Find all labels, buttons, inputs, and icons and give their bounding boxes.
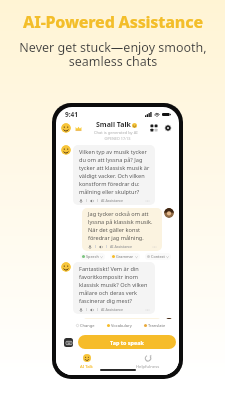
staticText: AI Talk (80, 364, 93, 370)
button[interactable]: Profile (61, 123, 71, 133)
button[interactable]: AI Talk (74, 353, 99, 371)
button[interactable]: Vocabulary (105, 322, 134, 329)
staticText: AI Assistance (110, 244, 133, 249)
button[interactable]: Tap to speak (78, 335, 176, 349)
button[interactable]: Grammar (110, 253, 140, 260)
button[interactable]: Fantastiskt! Vem är din favoritkompositr… (73, 262, 155, 314)
button[interactable]: Change (74, 322, 97, 329)
button[interactable]: Context (145, 253, 171, 260)
button[interactable]: Topics (149, 123, 159, 133)
staticText: Speech (86, 254, 99, 259)
staticText: Never get stuck—enjoy smooth, seamless c… (19, 39, 207, 70)
button[interactable]: Speech (80, 253, 105, 260)
staticText: AI Assistance (101, 198, 124, 203)
button[interactable]: Jag tycker också om att lyssna på klassi… (82, 208, 162, 251)
staticText: Translate (148, 323, 166, 328)
staticText: Vilken typ av musik tycker du om att lys… (79, 148, 150, 196)
staticText: AI Assistance (101, 307, 124, 312)
staticText: Grammar (116, 254, 134, 259)
button[interactable]: Vilken typ av musik tycker du om att lys… (73, 145, 155, 205)
button[interactable]: Premium (73, 123, 83, 133)
button[interactable]: Settings (163, 123, 173, 133)
staticText: Context (151, 254, 165, 259)
staticText: Small Talk (96, 120, 131, 130)
staticText: Chat is generated by AI (94, 130, 138, 135)
staticText: Helpfulness (136, 364, 160, 370)
button[interactable]: Translate (142, 322, 168, 329)
staticText: Jag tycker också om att lyssna på klassi… (88, 210, 157, 242)
staticText: Change (80, 323, 95, 328)
staticText: AI-Powered Assistance (23, 11, 203, 33)
staticText: OPENED 17:13 (61, 136, 174, 141)
staticText: Tap to speak (110, 339, 144, 346)
button[interactable]: Helpfulness (130, 353, 166, 371)
staticText: Fantastiskt! Vem är din favoritkompositr… (79, 265, 150, 305)
staticText: Vocabulary (111, 323, 132, 328)
staticText: 9:41 (65, 110, 78, 119)
button[interactable]: Keyboard (64, 338, 73, 347)
